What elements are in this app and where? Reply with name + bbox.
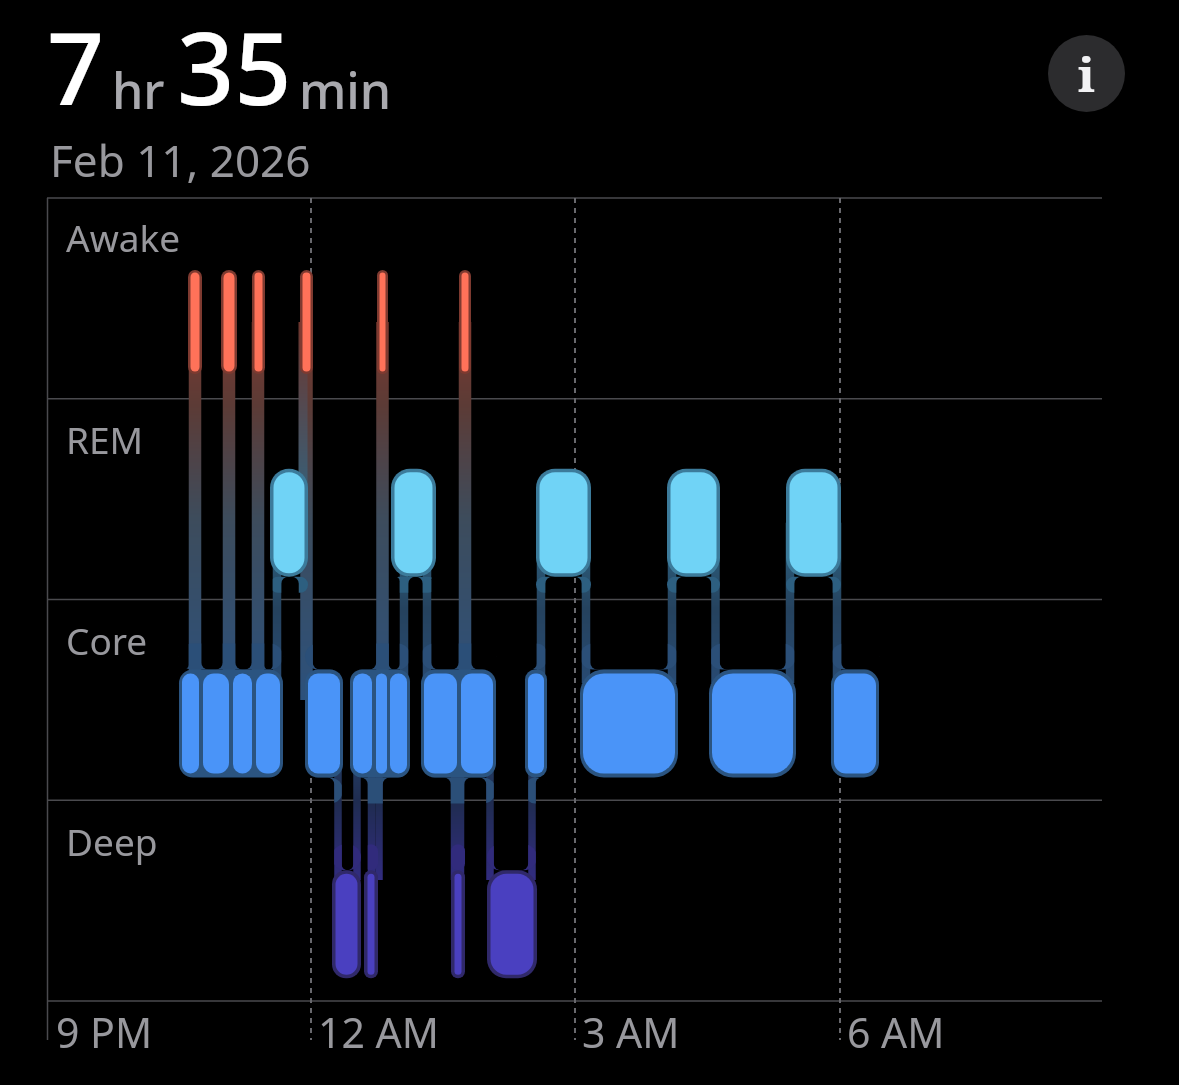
staticText: 12 AM — [318, 1004, 439, 1060]
staticText: i — [1078, 41, 1095, 106]
staticText: 3 AM — [582, 1004, 680, 1060]
staticText: min — [299, 56, 392, 124]
staticText: Awake — [66, 212, 181, 262]
staticText: Feb 11, 2026 — [50, 130, 311, 190]
staticText: 7 — [47, 0, 105, 134]
button[interactable]: i — [1048, 35, 1125, 112]
staticText: 9 PM — [56, 1004, 153, 1060]
staticText: REM — [66, 414, 144, 464]
staticText: 6 AM — [847, 1004, 945, 1060]
staticText: Deep — [66, 816, 158, 866]
staticText: hr — [112, 56, 165, 124]
staticText: 35 — [177, 0, 292, 134]
staticText: Core — [66, 615, 148, 665]
